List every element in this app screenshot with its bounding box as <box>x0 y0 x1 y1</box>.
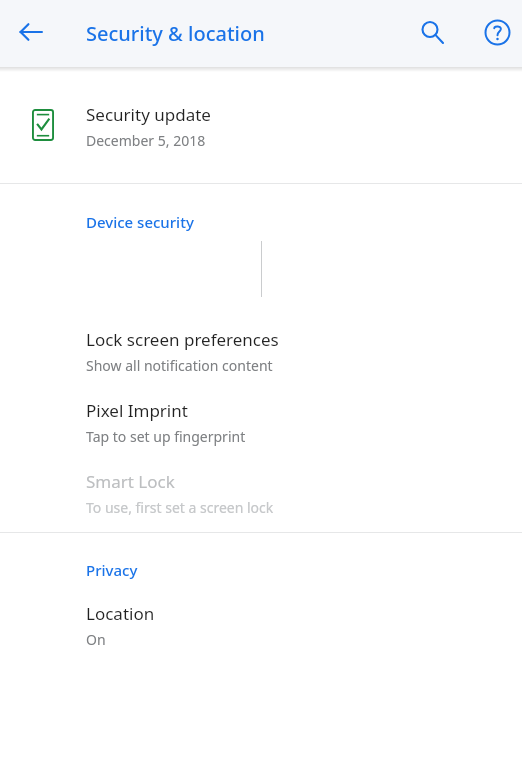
button[interactable]: Help <box>473 8 521 56</box>
button[interactable]: Pixel Imprint <box>0 397 522 448</box>
button[interactable]: Lock screen preferences <box>0 326 522 377</box>
button[interactable]: Search <box>408 8 456 56</box>
staticText: Device security <box>86 212 194 232</box>
staticText: Show all notification content <box>86 356 273 375</box>
button[interactable]: Smart Lock <box>0 468 522 519</box>
staticText: Location <box>86 602 155 625</box>
staticText: To use, first set a screen lock <box>86 498 274 517</box>
staticText: December 5, 2018 <box>86 131 206 150</box>
staticText: Security update <box>86 103 211 126</box>
staticText: On <box>86 630 106 649</box>
staticText: Lock screen preferences <box>86 328 279 351</box>
staticText: Privacy <box>86 560 138 580</box>
staticText: Pixel Imprint <box>86 399 188 422</box>
staticText: Security & location <box>86 20 265 47</box>
staticText: Tap to set up fingerprint <box>86 427 246 446</box>
button[interactable]: Back <box>7 8 55 56</box>
button[interactable]: Location <box>0 600 522 651</box>
button[interactable]: Security update <box>0 103 522 179</box>
staticText: Smart Lock <box>86 470 175 493</box>
